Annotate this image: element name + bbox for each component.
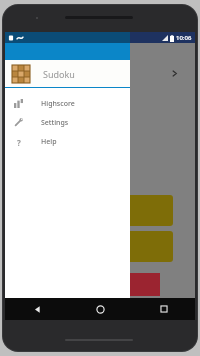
button[interactable]: Replay — [39, 273, 160, 296]
staticText: Help — [41, 137, 57, 147]
staticText: Sudoku — [43, 68, 75, 80]
button[interactable]: Sudoku — [5, 60, 130, 87]
button[interactable]: Settings — [5, 113, 130, 132]
button[interactable]: MB — [19, 231, 173, 262]
staticText: Highscore — [41, 99, 75, 109]
staticText: ? — [17, 137, 21, 146]
staticText: Settings — [41, 118, 69, 128]
button[interactable]: Highscore — [5, 94, 130, 113]
button[interactable]: ? — [5, 132, 130, 151]
button[interactable]: Back — [5, 298, 69, 320]
staticText: 10:06 — [176, 34, 192, 42]
button[interactable] — [19, 195, 173, 226]
button[interactable]: Home — [69, 298, 132, 320]
button[interactable]: Recents — [132, 298, 195, 320]
